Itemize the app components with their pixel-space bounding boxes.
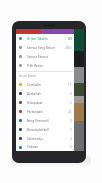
button[interactable]: Hi Jam Tolakhi xyxy=(16,34,74,43)
staticText: Idanmedju xyxy=(27,137,70,141)
staticText: 7 xyxy=(70,128,72,132)
button[interactable]: Pertanbain xyxy=(16,107,74,116)
staticText: 9 xyxy=(70,92,72,96)
staticText: 2 xyxy=(70,145,72,149)
staticText: Hidapubat xyxy=(27,101,70,105)
staticText: Anatenak xyxy=(27,92,70,96)
button[interactable]: Pilih Berita xyxy=(16,61,74,70)
button[interactable]: Cemualm xyxy=(16,80,74,89)
staticText: 12 xyxy=(68,83,72,87)
staticText: Pertanbain xyxy=(27,110,68,114)
staticText: 3 xyxy=(70,119,72,123)
staticText: 5 xyxy=(70,101,72,105)
staticText: 4 xyxy=(70,137,72,141)
button[interactable]: Nerg Pesnaroll xyxy=(16,116,74,125)
button[interactable]: Semua Yang Belum Dibaca xyxy=(16,43,74,52)
staticText: Hi Jam Tolakhi xyxy=(27,37,68,41)
staticText: Pilih Berita xyxy=(27,64,72,68)
button[interactable]: Idanmedju xyxy=(16,134,74,143)
staticText: Cemualm xyxy=(27,83,68,87)
staticText: Semua Favorit xyxy=(27,55,72,59)
button[interactable]: Semua Favorit xyxy=(16,52,74,61)
button[interactable]: Tedwak xyxy=(16,143,74,151)
staticText: Tedwak xyxy=(27,145,70,149)
button[interactable]: Berarivoblekell xyxy=(16,125,74,134)
button[interactable]: Hidapubat xyxy=(16,98,74,107)
staticText: 255x xyxy=(65,46,72,50)
staticText: Nerg Pesnaroll xyxy=(27,119,70,123)
staticText: Berarivoblekell xyxy=(27,128,70,132)
staticText: SN xyxy=(68,37,72,41)
button[interactable]: Anatenak xyxy=(16,89,74,98)
staticText: Semua Yang Belum Dibaca xyxy=(27,46,65,50)
staticText: 24 xyxy=(68,110,72,114)
staticText: Servis Berita xyxy=(19,74,36,78)
